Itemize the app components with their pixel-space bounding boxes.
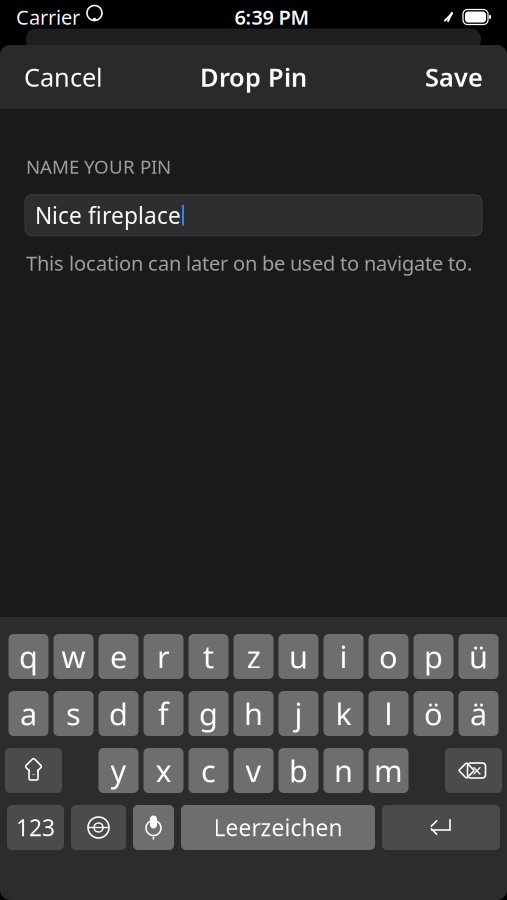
staticText: h — [244, 693, 263, 734]
button[interactable]: u — [278, 634, 318, 679]
staticText: e — [110, 636, 127, 677]
button[interactable]: o — [368, 634, 408, 679]
button[interactable]: Next keyboard — [71, 805, 126, 850]
staticText: c — [201, 750, 216, 791]
staticText: Cancel — [24, 60, 103, 94]
button[interactable]: i — [323, 634, 363, 679]
staticText: y — [110, 750, 126, 791]
button[interactable]: Save — [401, 45, 507, 109]
staticText: ä — [470, 693, 487, 734]
staticText: Save — [425, 60, 483, 94]
button[interactable]: h — [233, 691, 273, 736]
staticText: s — [66, 693, 81, 734]
button[interactable]: y — [98, 748, 138, 793]
staticText: ö — [424, 693, 443, 734]
button[interactable]: n — [323, 748, 363, 793]
button[interactable]: 123 — [7, 805, 64, 850]
staticText: r — [157, 636, 170, 677]
button[interactable]: r — [143, 634, 183, 679]
button[interactable]: s — [53, 691, 93, 736]
button[interactable]: Leerzeichen — [181, 805, 375, 850]
button[interactable]: m — [368, 748, 408, 793]
button[interactable]: ö — [413, 691, 453, 736]
staticText: Carrier — [16, 4, 80, 30]
staticText: m — [374, 750, 403, 791]
button[interactable]: t — [188, 634, 228, 679]
staticText: This location can later on be used to na… — [26, 250, 472, 276]
button[interactable]: Cancel — [0, 45, 127, 109]
staticText: NAME YOUR PIN — [26, 154, 171, 179]
staticText: o — [379, 636, 398, 677]
button[interactable]: z — [233, 634, 273, 679]
staticText: g — [199, 693, 218, 734]
staticText: w — [61, 636, 85, 677]
staticText: l — [384, 693, 392, 734]
staticText: p — [424, 636, 443, 677]
button[interactable]: l — [368, 691, 408, 736]
button[interactable]: Dictate — [133, 805, 174, 850]
button[interactable]: Shift — [5, 748, 62, 793]
button[interactable]: a — [8, 691, 48, 736]
button[interactable]: k — [323, 691, 363, 736]
button[interactable]: p — [413, 634, 453, 679]
staticText: n — [334, 750, 353, 791]
staticText: i — [339, 636, 347, 677]
staticText: d — [109, 693, 128, 734]
staticText: q — [19, 636, 38, 677]
button[interactable]: w — [53, 634, 93, 679]
staticText: u — [289, 636, 308, 677]
staticText: 123 — [16, 812, 55, 842]
staticText: a — [20, 693, 37, 734]
staticText: t — [203, 636, 214, 677]
staticText: k — [335, 693, 351, 734]
staticText: Drop Pin — [200, 60, 307, 94]
staticText: 6:39 PM — [234, 4, 309, 30]
button[interactable]: Return — [382, 805, 500, 850]
staticText: x — [155, 750, 171, 791]
button[interactable]: v — [233, 748, 273, 793]
button[interactable]: g — [188, 691, 228, 736]
staticText: Leerzeichen — [213, 812, 342, 842]
staticText: f — [158, 693, 169, 734]
button[interactable]: f — [143, 691, 183, 736]
staticText: ü — [469, 636, 488, 677]
staticText: Nice fireplace — [35, 200, 181, 230]
button[interactable]: c — [188, 748, 228, 793]
staticText: j — [294, 693, 302, 734]
button[interactable]: j — [278, 691, 318, 736]
staticText: v — [245, 750, 261, 791]
button[interactable]: x — [143, 748, 183, 793]
button[interactable]: ä — [458, 691, 498, 736]
staticText: b — [289, 750, 308, 791]
staticText: × — [472, 759, 482, 782]
button[interactable]: e — [98, 634, 138, 679]
button[interactable]: b — [278, 748, 318, 793]
button[interactable]: Delete — [445, 748, 502, 793]
button[interactable]: q — [8, 634, 48, 679]
button[interactable]: ü — [458, 634, 498, 679]
staticText: z — [246, 636, 260, 677]
button[interactable]: d — [98, 691, 138, 736]
